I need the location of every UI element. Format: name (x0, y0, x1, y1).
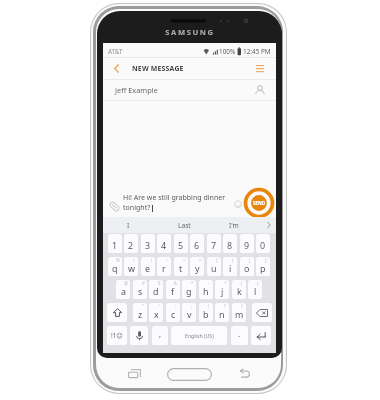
button[interactable]: 3 (141, 234, 155, 253)
button[interactable]: 4 (157, 234, 171, 253)
staticText: > (199, 257, 202, 263)
button[interactable]: Jeff Example (103, 80, 276, 101)
staticText: @ (124, 280, 128, 286)
button[interactable]: ; (182, 303, 196, 322)
button[interactable]: % (108, 257, 122, 276)
staticText: AT&T (108, 47, 123, 55)
staticText: ] (265, 257, 267, 263)
button[interactable]: More suggestions (262, 217, 276, 233)
staticText: < (183, 257, 186, 263)
button[interactable]: , (152, 326, 168, 345)
button[interactable]: Home (167, 368, 212, 381)
button[interactable]: " (133, 303, 147, 322)
button[interactable]: ( (232, 280, 246, 299)
button[interactable]: Enter (251, 326, 271, 345)
staticText: u (211, 262, 217, 274)
staticText: v (187, 308, 192, 320)
button[interactable]: # (133, 280, 147, 299)
button[interactable]: Voice input (130, 326, 148, 345)
button[interactable]: $ (149, 280, 163, 299)
staticText: NEW MESSAGE (132, 64, 184, 73)
staticText: d (153, 285, 159, 297)
button[interactable]: ! (199, 303, 213, 322)
button[interactable]: 9 (240, 234, 254, 253)
staticText: f (171, 285, 175, 297)
button[interactable]: ) (248, 280, 262, 299)
staticText: English (US) (185, 332, 214, 339)
staticText: n (219, 308, 225, 320)
button[interactable]: !1☺ (107, 326, 127, 345)
button[interactable]: 6 (190, 234, 204, 253)
button[interactable]: ] (256, 257, 270, 276)
staticText: g (186, 285, 192, 297)
staticText: . (238, 328, 241, 339)
staticText: $ (158, 280, 161, 286)
staticText: b (203, 308, 209, 320)
staticText: a (121, 285, 126, 297)
staticText: / (241, 303, 243, 309)
staticText: o (244, 262, 250, 274)
staticText: h (203, 285, 209, 297)
button[interactable]: * (182, 280, 196, 299)
staticText: + (224, 280, 227, 286)
button[interactable]: : (166, 303, 180, 322)
button[interactable]: ' (149, 303, 163, 322)
staticText: r (162, 262, 166, 274)
button[interactable]: Back (238, 369, 250, 380)
button[interactable]: 2 (124, 234, 138, 253)
staticText: [ (249, 257, 251, 263)
button[interactable]: } (223, 257, 237, 276)
button[interactable]: + (215, 280, 229, 299)
button[interactable]: Recent apps (128, 369, 141, 380)
button[interactable]: Shift (107, 303, 127, 322)
button[interactable]: / (232, 303, 246, 322)
button[interactable]: English (US) (171, 326, 227, 345)
button[interactable]: I (106, 217, 150, 234)
button[interactable]: | (141, 257, 155, 276)
button[interactable]: 1 (108, 234, 122, 253)
staticText: - (208, 280, 210, 286)
staticText: j (221, 285, 224, 297)
button[interactable]: 7 (207, 234, 221, 253)
button[interactable]: . (231, 326, 248, 345)
staticText: SAMSUNG (157, 27, 223, 38)
button[interactable]: Attach (108, 200, 121, 213)
button[interactable]: [ (240, 257, 254, 276)
button[interactable]: I'm (212, 217, 256, 234)
staticText: 5 (178, 239, 184, 251)
button[interactable]: < (174, 257, 188, 276)
button[interactable]: 5 (174, 234, 188, 253)
button[interactable]: Menu (249, 58, 271, 79)
staticText: 9 (244, 239, 250, 251)
staticText: q (112, 262, 118, 274)
button[interactable]: SEND (243, 187, 275, 219)
staticText: I'm (229, 221, 239, 230)
button[interactable]: - (199, 280, 213, 299)
button[interactable]: 8 (223, 234, 237, 253)
button[interactable]: 0 (256, 234, 270, 253)
button[interactable]: Last (162, 217, 206, 234)
button[interactable]: ~ (157, 257, 171, 276)
staticText: m (235, 308, 244, 320)
button[interactable]: & (166, 280, 180, 299)
staticText: ' (159, 303, 160, 309)
staticText: ! (208, 303, 210, 309)
button[interactable]: ? (215, 303, 229, 322)
staticText: 8 (227, 239, 233, 251)
button[interactable]: \ (124, 257, 138, 276)
staticText: !1☺ (111, 331, 124, 340)
staticText: z (138, 308, 143, 320)
button[interactable]: { (207, 257, 221, 276)
staticText: ; (191, 303, 193, 309)
button[interactable]: Backspace (252, 303, 272, 322)
button[interactable]: Back (105, 58, 127, 79)
staticText: , (159, 328, 162, 339)
staticText: SEND (253, 200, 266, 206)
staticText: l (254, 285, 257, 297)
button[interactable]: @ (116, 280, 130, 299)
staticText: ) (257, 280, 259, 286)
button[interactable]: > (190, 257, 204, 276)
button[interactable]: Emoji (233, 199, 246, 212)
staticText: p (260, 262, 266, 274)
staticText: | (150, 257, 153, 263)
